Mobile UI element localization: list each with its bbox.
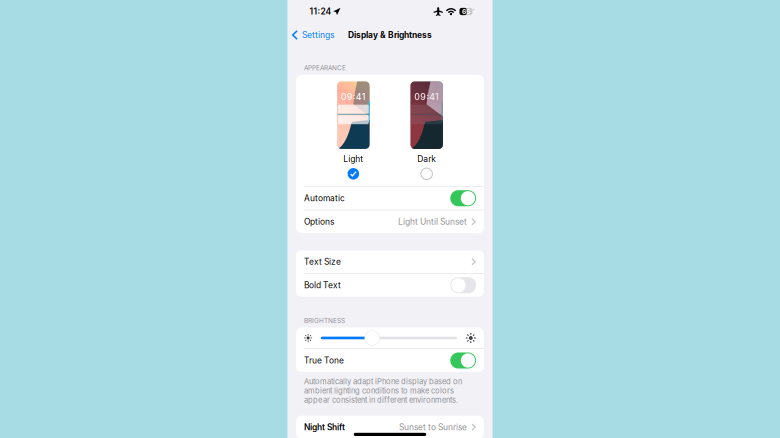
button[interactable]: 09:41 bbox=[404, 81, 450, 180]
staticText: 11:24 bbox=[309, 6, 331, 17]
button[interactable]: Night Shift bbox=[296, 416, 484, 438]
staticText: Dark bbox=[417, 154, 436, 164]
button[interactable]: Bold Text bbox=[296, 274, 484, 297]
staticText: 09:41 bbox=[341, 91, 366, 102]
staticText: Options bbox=[304, 217, 334, 227]
staticText: Sunset to Sunrise bbox=[399, 422, 467, 432]
staticText: 65 bbox=[462, 7, 470, 16]
staticText: Automatically adapt iPhone display based… bbox=[304, 377, 462, 405]
button[interactable]: Text Size bbox=[296, 250, 484, 273]
staticText: True Tone bbox=[304, 355, 344, 366]
button[interactable]: Options bbox=[296, 210, 484, 233]
staticText: Automatic bbox=[304, 193, 345, 203]
staticText: 09:41 bbox=[414, 91, 439, 102]
button[interactable]: Settings bbox=[287, 27, 335, 43]
staticText: Display & Brightness bbox=[348, 30, 432, 40]
staticText: BRIGHTNESS bbox=[304, 317, 345, 324]
button[interactable]: 09:41 bbox=[330, 81, 376, 180]
staticText: Text Size bbox=[304, 257, 341, 267]
button[interactable]: Automatic bbox=[296, 187, 484, 210]
staticText: Bold Text bbox=[304, 280, 341, 290]
button[interactable]: True Tone bbox=[296, 349, 484, 372]
staticText: Light bbox=[343, 154, 363, 164]
staticText: Night Shift bbox=[304, 422, 345, 432]
staticText: APPEARANCE bbox=[304, 64, 346, 72]
staticText: Light Until Sunset bbox=[398, 217, 467, 227]
staticText: Settings bbox=[302, 30, 335, 40]
